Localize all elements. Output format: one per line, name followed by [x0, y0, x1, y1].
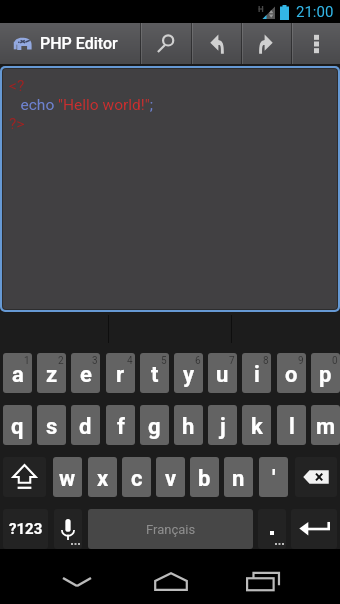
button[interactable]: v: [156, 457, 185, 497]
button[interactable]: <? echo "Hello world!"; ?>: [3, 69, 337, 309]
staticText: y: [183, 362, 195, 388]
staticText: 9: [298, 355, 304, 367]
staticText: 8: [263, 355, 269, 367]
button[interactable]: o: [277, 353, 306, 393]
button[interactable]: b: [190, 457, 219, 497]
staticText: b: [198, 466, 211, 492]
button[interactable]: p: [311, 353, 340, 393]
button[interactable]: u: [208, 353, 237, 393]
staticText: p: [319, 362, 332, 388]
button[interactable]: Voice input: [54, 509, 82, 549]
button[interactable]: Home: [134, 549, 207, 604]
button[interactable]: More options: [291, 23, 340, 64]
staticText: e: [80, 362, 92, 388]
staticText: g: [148, 414, 161, 440]
button[interactable]: m: [311, 405, 340, 445]
staticText: ?123: [9, 520, 43, 538]
button[interactable]: ': [259, 457, 288, 497]
button[interactable]: Redo: [241, 23, 291, 64]
button[interactable]: y: [174, 353, 203, 393]
staticText: s: [46, 414, 58, 440]
button[interactable]: [258, 509, 286, 549]
button[interactable]: w: [53, 457, 82, 497]
staticText: 5: [161, 355, 167, 367]
staticText: n: [232, 466, 245, 492]
staticText: z: [46, 362, 58, 388]
button[interactable]: x: [88, 457, 117, 497]
staticText: w: [59, 466, 76, 492]
button[interactable]: Hide keyboard: [40, 549, 113, 604]
staticText: l: [289, 414, 295, 440]
staticText: 3: [92, 355, 98, 367]
button[interactable]: z: [37, 353, 66, 393]
button[interactable]: n: [224, 457, 253, 497]
staticText: ': [272, 466, 276, 492]
button[interactable]: s: [37, 405, 66, 445]
button[interactable]: q: [3, 405, 32, 445]
button[interactable]: t: [140, 353, 169, 393]
staticText: r: [116, 362, 125, 388]
staticText: j: [220, 414, 226, 440]
staticText: 4: [127, 355, 133, 367]
staticText: 21:00: [296, 3, 334, 21]
button[interactable]: r: [106, 353, 135, 393]
staticText: i: [254, 362, 260, 388]
staticText: m: [316, 414, 336, 440]
staticText: PHP Editor: [40, 34, 118, 53]
staticText: 0: [332, 355, 338, 367]
staticText: u: [216, 362, 229, 388]
staticText: t: [151, 362, 159, 388]
staticText: 7: [229, 355, 235, 367]
staticText: c: [131, 466, 143, 492]
button[interactable]: Undo: [191, 23, 242, 64]
button[interactable]: Enter: [291, 509, 337, 549]
button[interactable]: Backspace: [295, 457, 337, 497]
staticText: Français: [146, 522, 196, 537]
staticText: x: [97, 466, 109, 492]
staticText: o: [285, 362, 298, 388]
button[interactable]: a: [3, 353, 32, 393]
button[interactable]: Shift: [3, 457, 46, 497]
button[interactable]: h: [174, 405, 203, 445]
staticText: v: [165, 466, 177, 492]
button[interactable]: c: [122, 457, 151, 497]
staticText: f: [117, 414, 125, 440]
staticText: d: [79, 414, 92, 440]
button[interactable]: e: [71, 353, 100, 393]
button[interactable]: f: [106, 405, 135, 445]
button[interactable]: d: [71, 405, 100, 445]
button[interactable]: Français: [88, 509, 253, 549]
button[interactable]: Recent apps: [226, 549, 299, 604]
staticText: 6: [195, 355, 201, 367]
staticText: 2: [58, 355, 64, 367]
staticText: q: [11, 414, 24, 440]
staticText: h: [182, 414, 195, 440]
staticText: <? echo "Hello world!"; ?>: [9, 77, 154, 133]
staticText: a: [12, 362, 24, 388]
button[interactable]: g: [140, 405, 169, 445]
button[interactable]: Search: [140, 23, 191, 64]
button[interactable]: l: [277, 405, 306, 445]
staticText: 1: [24, 355, 30, 367]
button[interactable]: k: [242, 405, 271, 445]
button[interactable]: j: [208, 405, 237, 445]
button[interactable]: i: [242, 353, 271, 393]
button[interactable]: ?123: [3, 509, 48, 549]
staticText: k: [251, 414, 263, 440]
button[interactable]: PHP Editor: [0, 23, 140, 64]
